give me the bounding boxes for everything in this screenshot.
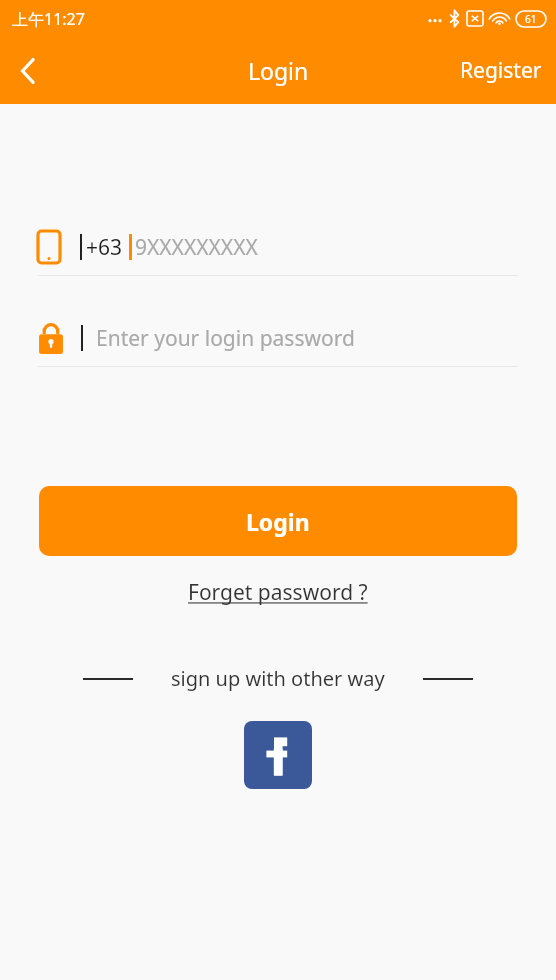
button[interactable]: Back	[0, 43, 56, 99]
staticText: 上午11:27	[12, 8, 85, 30]
staticText: 61	[525, 12, 537, 26]
staticText: Register	[460, 56, 542, 85]
button[interactable]: Register	[446, 46, 556, 95]
staticText: Enter your login password	[96, 324, 355, 353]
button[interactable]: Forget password ?	[180, 574, 376, 611]
staticText: Login	[248, 55, 309, 86]
staticText: Login	[246, 506, 310, 537]
staticText: sign up with other way	[171, 665, 385, 692]
button[interactable]: Login	[39, 486, 517, 556]
button[interactable]: Enter your login password	[38, 310, 518, 366]
staticText: 9XXXXXXXXX	[135, 233, 258, 262]
button[interactable]: Sign up with Facebook	[244, 721, 312, 789]
staticText: Forget password ?	[188, 578, 368, 607]
button[interactable]: +63	[38, 219, 518, 275]
staticText: +63	[86, 233, 123, 262]
